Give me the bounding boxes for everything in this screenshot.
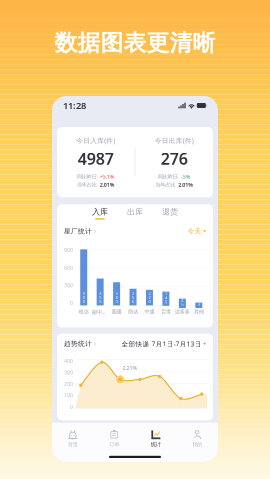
staticText: 0 [83,299,85,304]
staticText: 2.01% [178,181,193,188]
staticText: 600 [64,264,73,271]
staticText: 100 [64,392,73,399]
staticText: 9 [83,290,85,296]
button[interactable]: 我的 [176,430,218,448]
staticText: 11:28 [63,99,86,112]
staticText: 400 [64,357,73,364]
staticText: 订单 [109,441,119,448]
staticText: 星厂统计 [64,227,92,235]
staticText: 5 [165,299,167,305]
staticText: 6 [99,299,101,304]
staticText: 数据图表更清晰 [54,29,215,57]
staticText: 3 [198,301,200,307]
staticText: 1 [165,291,167,296]
staticText: 我的 [192,441,202,448]
staticText: 机达 [79,308,89,315]
staticText: +5.1% [100,173,115,180]
staticText: 4 [181,297,183,303]
staticText: 5 [132,295,134,300]
staticText: 900 [64,246,73,253]
staticText: 邮中速运 [92,308,108,315]
staticText: 300 [64,369,73,376]
staticText: 今日出库(件) [155,136,194,145]
staticText: 6 [132,299,134,304]
button[interactable]: 统计 [135,430,176,448]
staticText: 2 [132,290,134,296]
staticText: 中通 [144,308,154,315]
staticText: 同比昨日 [77,173,97,180]
staticText: 5 [181,302,183,307]
staticText: 300 [64,282,73,289]
button[interactable]: 今天 [187,227,206,235]
staticText: 0 [116,299,118,304]
staticText: 0 [83,295,85,300]
staticText: 其他 [194,308,204,315]
staticText: 当年占比 [77,181,97,188]
staticText: 百世 [161,308,171,315]
staticText: 4 [165,295,167,300]
staticText: 入库 [92,207,108,217]
staticText: 圆通 [112,308,122,315]
staticText: 8 [116,295,118,300]
staticText: 今日入库(件) [76,136,115,145]
staticText: 6 [116,290,118,296]
button[interactable]: 趋势统计 [64,340,96,348]
staticText: 276 [161,148,188,169]
staticText: 0 [70,403,73,410]
staticText: 4987 [78,148,114,169]
staticText: 2.01% [100,181,115,188]
staticText: 200 [64,380,73,387]
button[interactable]: 订单 [93,430,135,448]
staticText: 2 [148,295,150,300]
staticText: 趋势统计 [64,340,92,348]
staticText: 出库 [127,207,143,217]
staticText: 5 [99,295,101,300]
button[interactable]: 出库 [127,207,143,220]
button[interactable]: 退货 [162,207,178,220]
button[interactable]: 入库 [92,207,108,220]
button[interactable]: 全部快递 7月1日-7月13日 [121,339,206,348]
staticText: 同比昨日 [158,173,178,180]
staticText: 2 [198,297,200,303]
button[interactable]: 首页 [52,430,93,448]
staticText: 韵达 [128,308,138,315]
staticText: 退货 [162,207,178,217]
staticText: -5% [181,173,191,180]
staticText: 首页 [68,441,78,448]
staticText: 达多多 [175,308,190,315]
staticText: 0 [148,299,150,304]
staticText: 2 [148,290,150,296]
staticText: 今天 [187,227,201,235]
staticText: 4 [99,290,101,296]
staticText: 0 [70,299,73,306]
staticText: 全部快递 7月1日-7月13日 [121,339,201,348]
button[interactable]: 星厂统计 [64,227,96,235]
staticText: 统计 [151,441,161,448]
staticText: 当年占比 [155,181,175,188]
staticText: 2.21% [122,364,137,371]
